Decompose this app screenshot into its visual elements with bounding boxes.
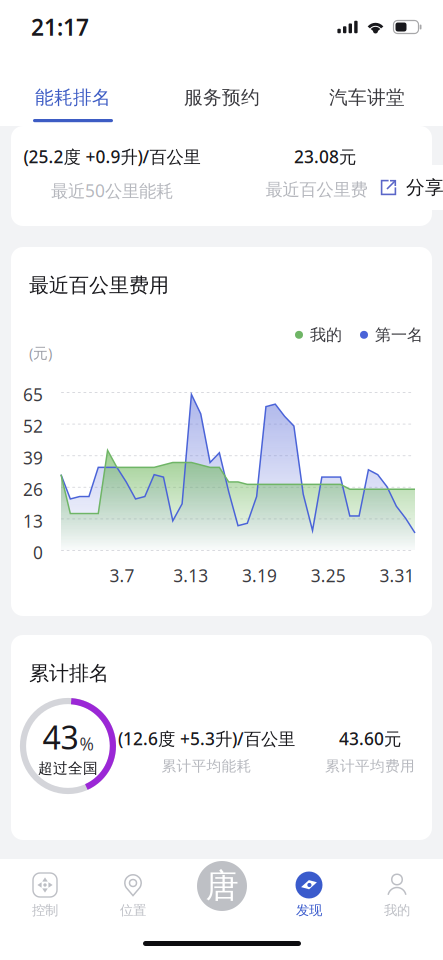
staticText: 我的 xyxy=(310,325,342,345)
staticText: 23.08元 xyxy=(294,145,356,168)
staticText: (12.6度 +5.3升)/百公里 xyxy=(118,727,295,750)
staticText: 3.19 xyxy=(242,564,277,587)
staticText: 控制 xyxy=(32,902,58,918)
staticText: 39 xyxy=(23,446,43,469)
staticText: 累计排名 xyxy=(29,661,109,686)
staticText: 13 xyxy=(23,509,43,532)
staticText: 第一名 xyxy=(375,325,423,345)
button[interactable]: 汽车讲堂 xyxy=(307,54,427,126)
staticText: 累计平均能耗 xyxy=(161,757,251,775)
staticText: % xyxy=(79,732,93,755)
staticText: 分享 xyxy=(406,176,443,199)
button[interactable]: 我的 xyxy=(358,872,436,934)
staticText: 位置 xyxy=(120,902,146,918)
staticText: 43 xyxy=(42,716,78,758)
staticText: 3.31 xyxy=(379,564,414,587)
staticText: 最近50公里能耗 xyxy=(51,179,173,202)
button[interactable]: 控制 xyxy=(6,872,84,934)
button[interactable]: 服务预约 xyxy=(162,54,282,126)
staticText: 26 xyxy=(23,478,43,501)
staticText: 超过全国 xyxy=(38,759,98,777)
button[interactable]: 能耗排名 xyxy=(13,54,133,126)
button[interactable]: 分享 xyxy=(367,165,443,210)
staticText: (25.2度 +0.9升)/百公里 xyxy=(23,145,200,168)
staticText: (元) xyxy=(29,343,52,362)
staticText: 服务预约 xyxy=(184,86,260,109)
staticText: 52 xyxy=(23,415,43,438)
staticText: 我的 xyxy=(384,902,410,918)
staticText: 65 xyxy=(23,383,43,406)
staticText: 唐 xyxy=(205,865,238,906)
staticText: 43.60元 xyxy=(339,727,401,750)
staticText: 3.13 xyxy=(173,564,208,587)
staticText: 累计平均费用 xyxy=(325,757,415,775)
staticText: 3.7 xyxy=(109,564,134,587)
staticText: 21:17 xyxy=(31,12,89,42)
staticText: 发现 xyxy=(296,902,322,918)
button[interactable]: 唐 xyxy=(197,861,247,911)
staticText: 汽车讲堂 xyxy=(329,86,405,109)
staticText: 最近百公里费用 xyxy=(29,273,169,298)
staticText: 最近百公里费用 xyxy=(265,179,384,200)
staticText: 3.25 xyxy=(311,564,346,587)
button[interactable]: 发现 xyxy=(270,872,348,934)
staticText: 能耗排名 xyxy=(35,86,111,109)
button[interactable]: 位置 xyxy=(94,872,172,934)
staticText: 0 xyxy=(33,541,43,564)
